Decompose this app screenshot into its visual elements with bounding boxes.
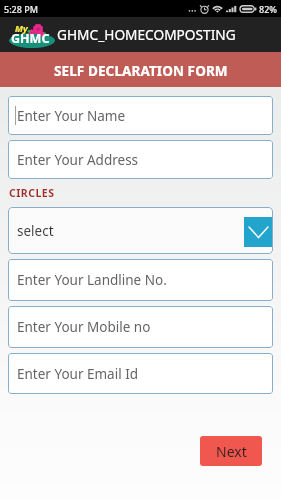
staticText: Next bbox=[216, 442, 247, 461]
staticText: Enter Your Address bbox=[17, 151, 139, 169]
staticText: Enter Your Landline No. bbox=[17, 271, 167, 289]
button[interactable]: Open circles dropdown bbox=[244, 217, 272, 247]
button[interactable]: Enter Your Address bbox=[8, 140, 273, 179]
staticText: SELF DECLARATION FORM bbox=[54, 62, 228, 80]
staticText: Enter Your Name bbox=[17, 107, 126, 125]
staticText: CIRCLES bbox=[9, 186, 55, 200]
button[interactable]: Enter Your Email Id bbox=[8, 353, 273, 394]
staticText: 5:28 PM bbox=[4, 3, 38, 15]
staticText: My bbox=[15, 22, 28, 34]
button[interactable]: select bbox=[8, 207, 273, 254]
staticText: select bbox=[17, 222, 54, 240]
button[interactable]: Enter Your Mobile no bbox=[8, 306, 273, 348]
staticText: Enter Your Mobile no bbox=[17, 318, 151, 336]
staticText: 82% bbox=[259, 3, 277, 15]
button[interactable]: Enter Your Landline No. bbox=[8, 259, 273, 301]
staticText: Enter Your Email Id bbox=[17, 365, 139, 383]
staticText: GHMC bbox=[11, 30, 50, 47]
staticText: GHMC_HOMECOMPOSTING bbox=[57, 25, 236, 44]
button[interactable]: Enter Your Name bbox=[8, 96, 273, 135]
button[interactable]: Next bbox=[200, 436, 262, 466]
